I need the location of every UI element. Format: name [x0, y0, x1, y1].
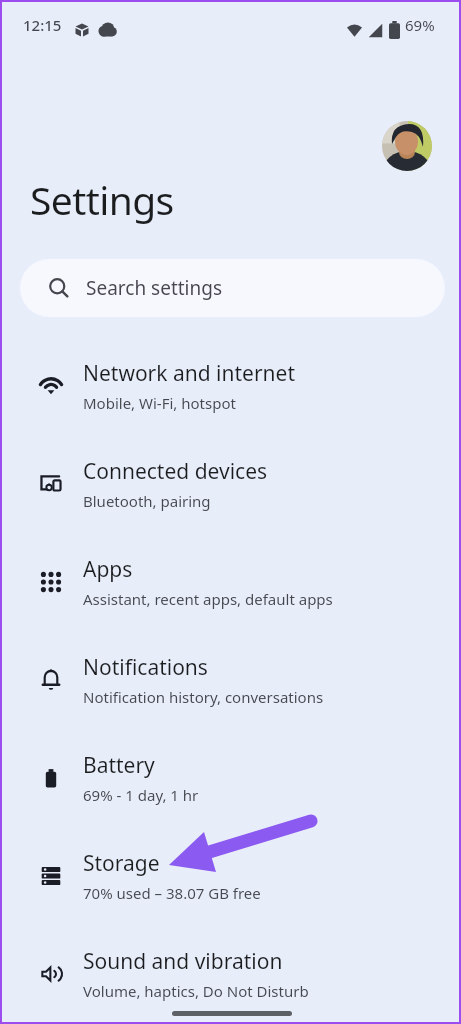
button[interactable]: Connected devices [2, 435, 459, 533]
staticText: 69% - 1 day, 1 hr [83, 785, 199, 805]
staticText: Apps [83, 555, 133, 584]
staticText: 70% used – 38.07 GB free [83, 883, 261, 903]
staticText: Mobile, Wi-Fi, hotspot [83, 393, 236, 413]
staticText: Notification history, conversations [83, 687, 324, 707]
button[interactable]: Battery [2, 729, 459, 827]
staticText: 12:15 [23, 15, 62, 35]
staticText: Notifications [83, 653, 208, 682]
button[interactable]: Network and internet [2, 337, 459, 435]
staticText: Bluetooth, pairing [83, 491, 211, 511]
staticText: 69% [405, 15, 435, 35]
staticText: Connected devices [83, 457, 268, 486]
staticText: Volume, haptics, Do Not Disturb [83, 981, 309, 1001]
button[interactable]: Sound and vibration [2, 925, 459, 1023]
button[interactable]: Notifications [2, 631, 459, 729]
button[interactable]: Apps [2, 533, 459, 631]
button[interactable]: Search settings [20, 259, 445, 317]
button[interactable] [382, 121, 432, 171]
button[interactable]: Storage [2, 827, 459, 925]
staticText: Search settings [86, 275, 223, 301]
staticText: Network and internet [83, 359, 295, 388]
staticText: Battery [83, 751, 155, 780]
staticText: Sound and vibration [83, 947, 283, 976]
staticText: Settings [30, 173, 174, 226]
staticText: Assistant, recent apps, default apps [83, 589, 333, 609]
staticText: Storage [83, 849, 160, 878]
